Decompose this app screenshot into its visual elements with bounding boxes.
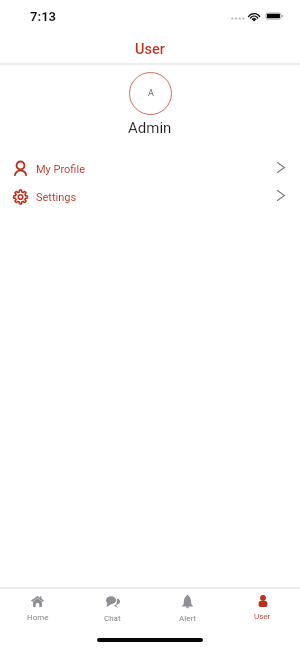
button[interactable]: Settings xyxy=(0,183,300,211)
staticText: Settings xyxy=(36,191,77,204)
staticText: User xyxy=(254,612,271,621)
button[interactable]: User xyxy=(225,589,300,621)
staticText: User xyxy=(135,41,165,58)
staticText: 7:13 xyxy=(30,9,57,24)
button[interactable]: Home xyxy=(0,589,75,622)
button[interactable]: Alert xyxy=(150,589,225,623)
button[interactable]: My Profile xyxy=(0,155,300,183)
staticText: A xyxy=(148,88,154,99)
button[interactable]: Chat xyxy=(75,589,150,623)
staticText: Chat xyxy=(104,614,121,623)
staticText: Alert xyxy=(179,614,196,623)
staticText: Admin xyxy=(128,119,172,137)
staticText: Home xyxy=(27,613,49,622)
staticText: My Profile xyxy=(36,163,85,176)
